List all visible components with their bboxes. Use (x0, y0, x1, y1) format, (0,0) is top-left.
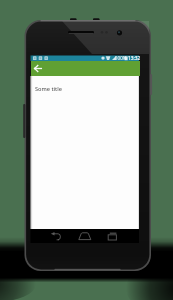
button[interactable] (49, 232, 62, 242)
staticText: 100% (115, 55, 127, 61)
staticText: Some title (35, 85, 62, 93)
staticText: 13:32 (128, 55, 141, 62)
button[interactable] (31, 61, 140, 76)
button[interactable] (78, 232, 92, 242)
button[interactable] (107, 232, 119, 242)
